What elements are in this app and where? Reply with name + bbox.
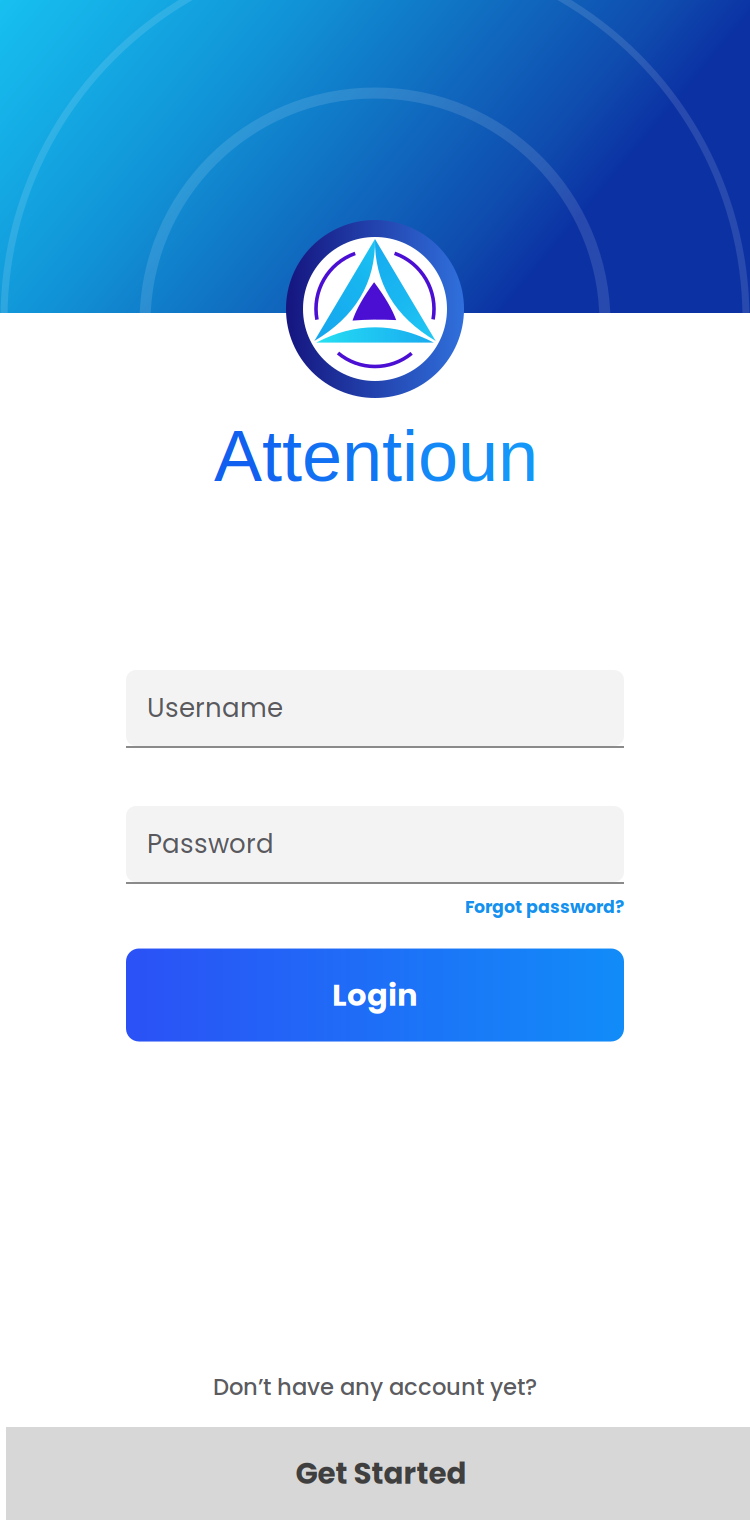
staticText: Forgot password? bbox=[465, 895, 624, 919]
staticText: i bbox=[402, 416, 418, 496]
button[interactable]: Get Started bbox=[6, 1427, 750, 1520]
staticText: Username bbox=[147, 690, 283, 726]
staticText: n bbox=[498, 416, 538, 496]
button[interactable]: Forgot password? bbox=[465, 894, 624, 920]
staticText: A bbox=[214, 416, 262, 496]
staticText: o bbox=[418, 416, 458, 496]
staticText: Login bbox=[332, 973, 418, 1016]
staticText: n bbox=[342, 416, 382, 496]
staticText: Get Started bbox=[295, 1453, 466, 1494]
button[interactable]: Login bbox=[126, 948, 624, 1041]
staticText: t bbox=[262, 416, 282, 496]
staticText: t bbox=[382, 416, 402, 496]
staticText: t bbox=[282, 416, 302, 496]
staticText: e bbox=[302, 416, 342, 496]
staticText: u bbox=[458, 416, 498, 496]
staticText: Don’t have any account yet? bbox=[213, 1371, 537, 1403]
staticText: Password bbox=[147, 826, 274, 862]
